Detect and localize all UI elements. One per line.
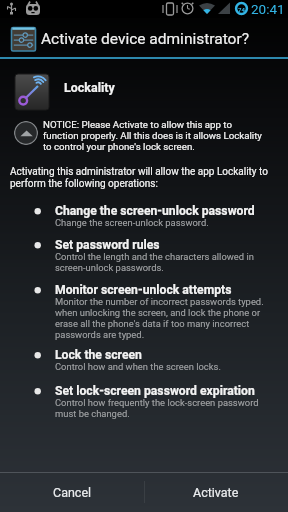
staticText: Activating this administrator will allow… xyxy=(10,166,268,190)
staticText: 74 xyxy=(238,6,245,13)
staticText: Change the screen-unlock password xyxy=(55,204,255,218)
staticText: Activate xyxy=(193,485,239,500)
button[interactable] xyxy=(14,121,38,145)
staticText: Activate device administrator? xyxy=(41,30,249,48)
staticText: Monitor the number of incorrect password… xyxy=(55,296,264,340)
staticText: 20:41 xyxy=(251,1,285,17)
staticText: Control the length and the characters al… xyxy=(55,251,254,273)
staticText: Lockality xyxy=(64,80,115,95)
staticText: Lock the screen xyxy=(55,348,142,362)
staticText: Cancel xyxy=(53,485,92,500)
staticText: Control how and when the screen locks. xyxy=(55,361,221,372)
staticText: Change the screen-unlock password. xyxy=(55,217,209,228)
button[interactable]: Activate xyxy=(144,472,288,512)
staticText: NOTICE: Please Activate to allow this ap… xyxy=(43,119,262,152)
staticText: Set lock-screen password expiration xyxy=(55,384,255,398)
button[interactable]: Cancel xyxy=(0,472,144,512)
staticText: Set password rules xyxy=(55,238,160,252)
staticText: Control how frequently the lock-screen p… xyxy=(55,397,259,419)
staticText: Monitor screen-unlock attempts xyxy=(55,283,232,297)
